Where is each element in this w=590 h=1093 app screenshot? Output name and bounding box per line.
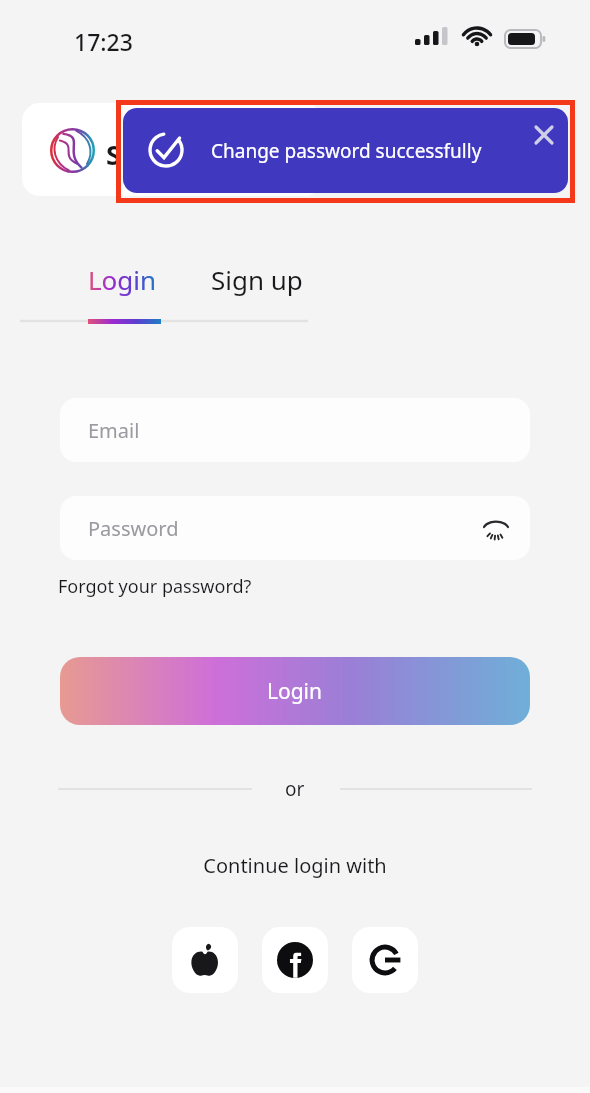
staticText: or <box>285 776 305 802</box>
button[interactable]: Change password successfully <box>123 108 568 193</box>
button[interactable]: Forgot your password? <box>58 574 252 599</box>
staticText: Continue login with <box>203 852 387 879</box>
staticText: Login <box>267 677 323 706</box>
staticText: S <box>106 136 121 173</box>
button[interactable]: S <box>22 103 322 196</box>
button[interactable]: Password <box>60 496 530 560</box>
staticText: Change password successfully <box>211 138 482 164</box>
button[interactable]: Sign in with Google <box>352 927 418 993</box>
button[interactable]: Login <box>60 657 530 725</box>
staticText: Sign up <box>211 262 303 297</box>
button[interactable]: Show password <box>476 508 516 548</box>
staticText: Email <box>88 417 140 444</box>
button[interactable]: Sign in with Apple <box>172 927 238 993</box>
staticText: Login <box>88 262 157 297</box>
button[interactable]: Email <box>60 398 530 462</box>
button[interactable]: Dismiss <box>528 119 560 151</box>
staticText: 17:23 <box>74 26 133 57</box>
button[interactable]: Sign in with Facebook <box>262 927 328 993</box>
button[interactable]: Login <box>88 262 157 297</box>
staticText: Forgot your password? <box>58 574 252 599</box>
button[interactable]: Sign up <box>211 262 303 297</box>
staticText: Password <box>88 515 179 542</box>
